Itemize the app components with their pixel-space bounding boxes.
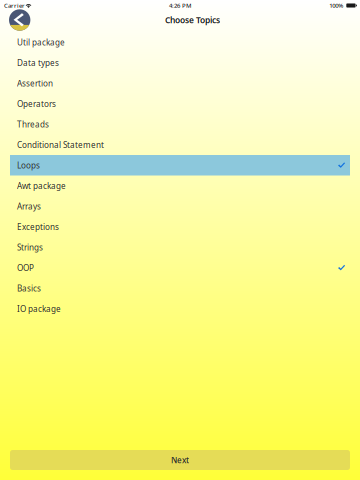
staticText: Carrier (4, 1, 25, 10)
staticText: Strings (17, 242, 43, 253)
staticText: Choose Topics (165, 14, 220, 26)
staticText: Basics (17, 283, 41, 294)
staticText: Loops (17, 160, 40, 171)
button[interactable]: Basics (10, 278, 350, 298)
staticText: Conditional Statement (17, 139, 104, 150)
staticText: 100% (329, 1, 343, 10)
button[interactable]: Assertion (10, 73, 350, 93)
staticText: 4:26 PM (169, 1, 192, 10)
staticText: Awt package (17, 180, 66, 191)
button[interactable]: Loops (10, 155, 350, 175)
button[interactable]: Util package (10, 32, 350, 52)
button[interactable]: Conditional Statement (10, 134, 350, 155)
button[interactable]: Operators (10, 93, 350, 114)
staticText: Data types (17, 57, 59, 68)
button[interactable]: Exceptions (10, 216, 350, 237)
staticText: Arrays (17, 201, 41, 212)
button[interactable]: OOP (10, 257, 350, 278)
staticText: Util package (17, 37, 65, 48)
staticText: Operators (17, 98, 56, 109)
staticText: Exceptions (17, 221, 59, 232)
button[interactable]: Next (10, 450, 350, 470)
button[interactable]: Data types (10, 52, 350, 73)
button[interactable]: Arrays (10, 196, 350, 216)
staticText: IO package (17, 303, 61, 314)
button[interactable]: IO package (10, 298, 350, 319)
button[interactable]: Awt package (10, 175, 350, 196)
staticText: Assertion (17, 78, 53, 89)
staticText: Threads (17, 119, 49, 130)
staticText: Next (171, 454, 189, 466)
staticText: OOP (17, 262, 34, 273)
button[interactable]: Threads (10, 114, 350, 134)
button[interactable]: Strings (10, 237, 350, 257)
button[interactable]: Back (9, 9, 30, 31)
